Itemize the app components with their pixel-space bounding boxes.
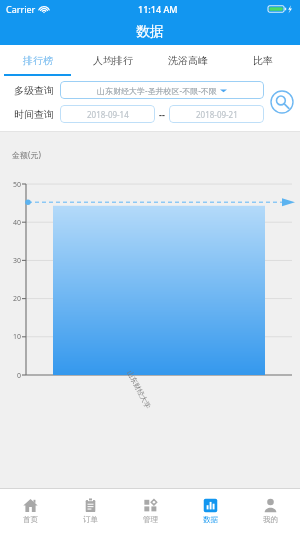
staticText: 2018-09-14 [87, 109, 129, 120]
staticText: 0 [0, 371, 21, 381]
staticText: 数据 [203, 515, 218, 524]
button[interactable]: 数据 [180, 489, 240, 533]
button[interactable]: 管理 [120, 489, 180, 533]
staticText: 排行榜 [23, 54, 53, 67]
button[interactable]: 2018-09-21 [169, 105, 264, 123]
staticText: 10 [0, 332, 21, 342]
button[interactable]: 洗浴高峰 [150, 45, 225, 76]
staticText: 人均排行 [93, 54, 133, 67]
staticText: 金额(元) [12, 149, 41, 160]
staticText: 洗浴高峰 [168, 54, 208, 67]
staticText: 我的 [263, 515, 278, 524]
button[interactable]: 人均排行 [75, 45, 150, 76]
staticText: 管理 [143, 515, 158, 524]
staticText: 山东财经大学 [125, 369, 153, 410]
staticText: 2018-09-21 [196, 109, 238, 120]
button[interactable]: 订单 [60, 489, 120, 533]
button[interactable]: 2018-09-14 [60, 105, 155, 123]
staticText: 比率 [253, 54, 273, 67]
staticText: -- [159, 108, 165, 120]
staticText: 首页 [23, 515, 38, 524]
staticText: 50 [0, 180, 21, 190]
staticText: 30 [0, 256, 21, 266]
staticText: 数据 [136, 23, 164, 41]
button[interactable]: 我的 [240, 489, 300, 533]
button[interactable]: 排行榜 [0, 45, 75, 76]
button[interactable]: 首页 [0, 489, 60, 533]
button[interactable]: 比率 [225, 45, 300, 76]
staticText: 时间查询 [14, 108, 54, 121]
staticText: 多级查询 [14, 84, 54, 97]
staticText: 11:14 AM [138, 3, 178, 15]
staticText: Carrier [6, 3, 36, 15]
staticText: 40 [0, 218, 21, 228]
staticText: 山东财经大学-圣井校区-不限-不限 [97, 85, 217, 96]
staticText: 20 [0, 294, 21, 304]
staticText: 订单 [83, 515, 98, 524]
button[interactable]: 搜索 [269, 89, 295, 115]
button[interactable]: 山东财经大学-圣井校区-不限-不限 [60, 81, 264, 99]
